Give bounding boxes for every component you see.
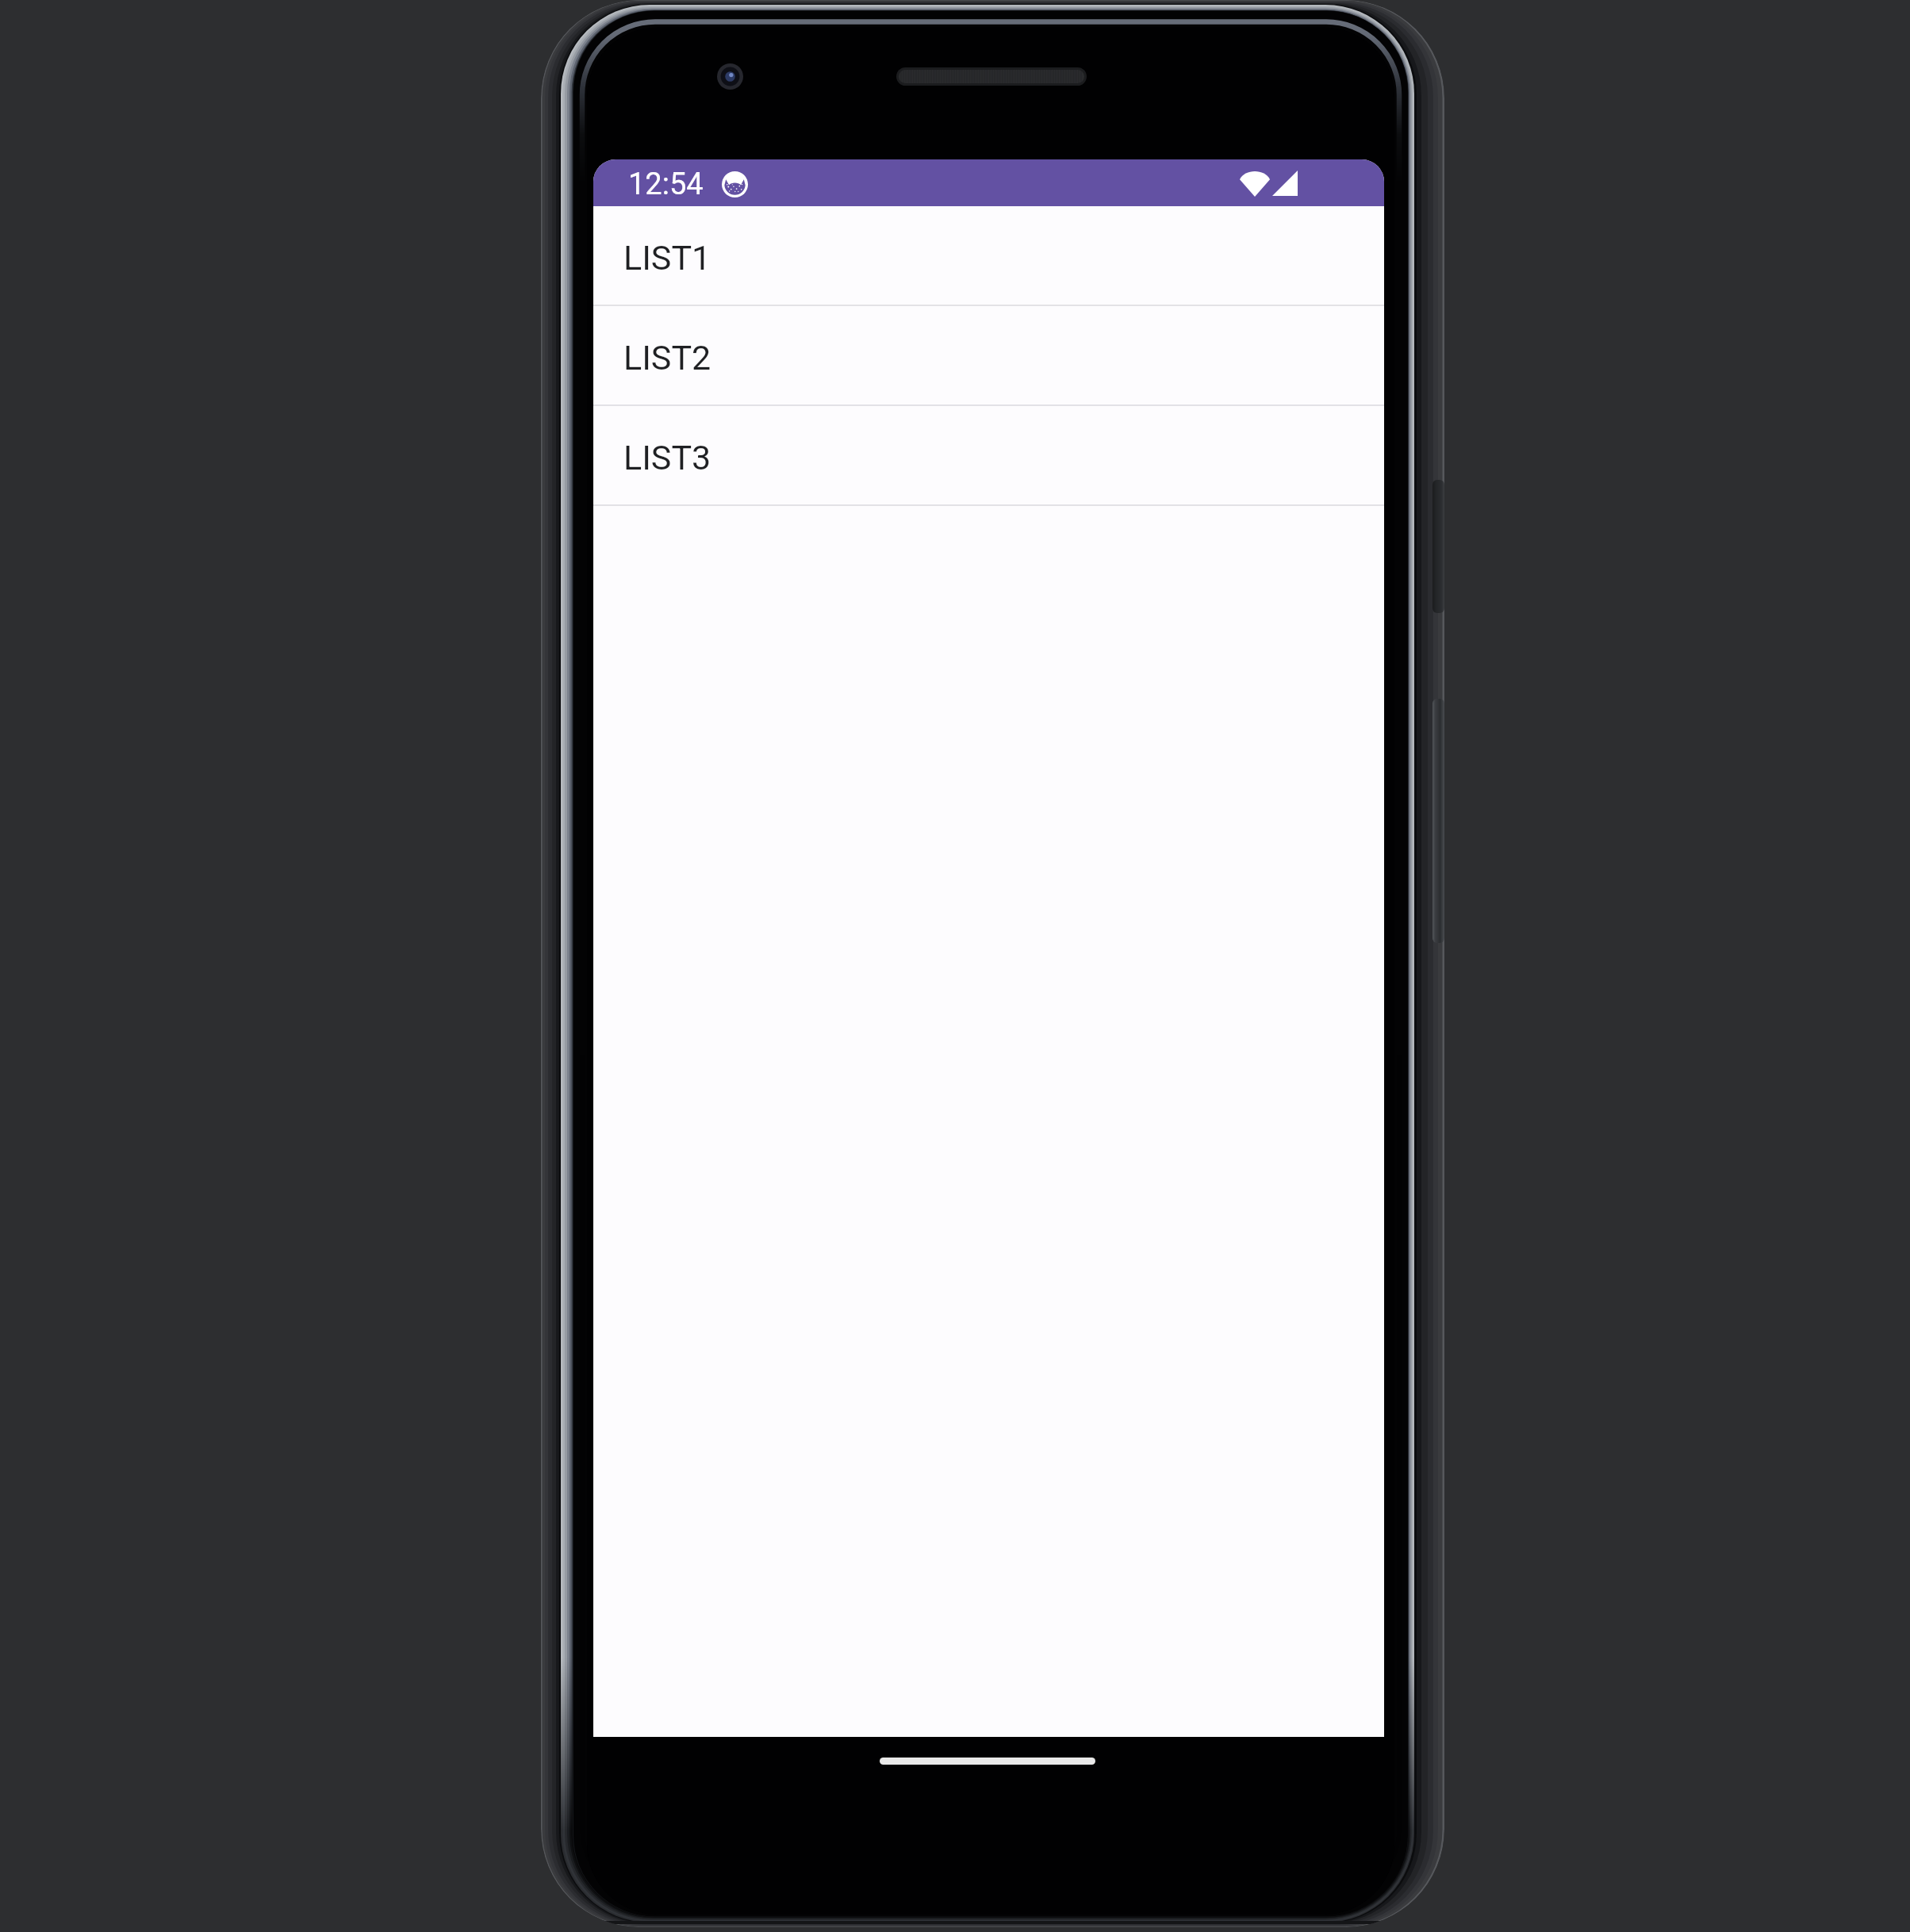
button[interactable]: LIST3	[593, 406, 1384, 506]
other: Home	[880, 1758, 1095, 1765]
staticText: LIST1	[623, 238, 711, 278]
other: Wi-Fi	[1240, 171, 1270, 197]
other: Notification	[722, 171, 748, 197]
other: Mobile signal	[1272, 171, 1298, 196]
button[interactable]: LIST1	[593, 206, 1384, 306]
button[interactable]: LIST2	[593, 306, 1384, 406]
staticText: LIST3	[623, 438, 711, 477]
staticText: 12:54	[628, 167, 704, 202]
staticText: LIST2	[623, 338, 711, 378]
